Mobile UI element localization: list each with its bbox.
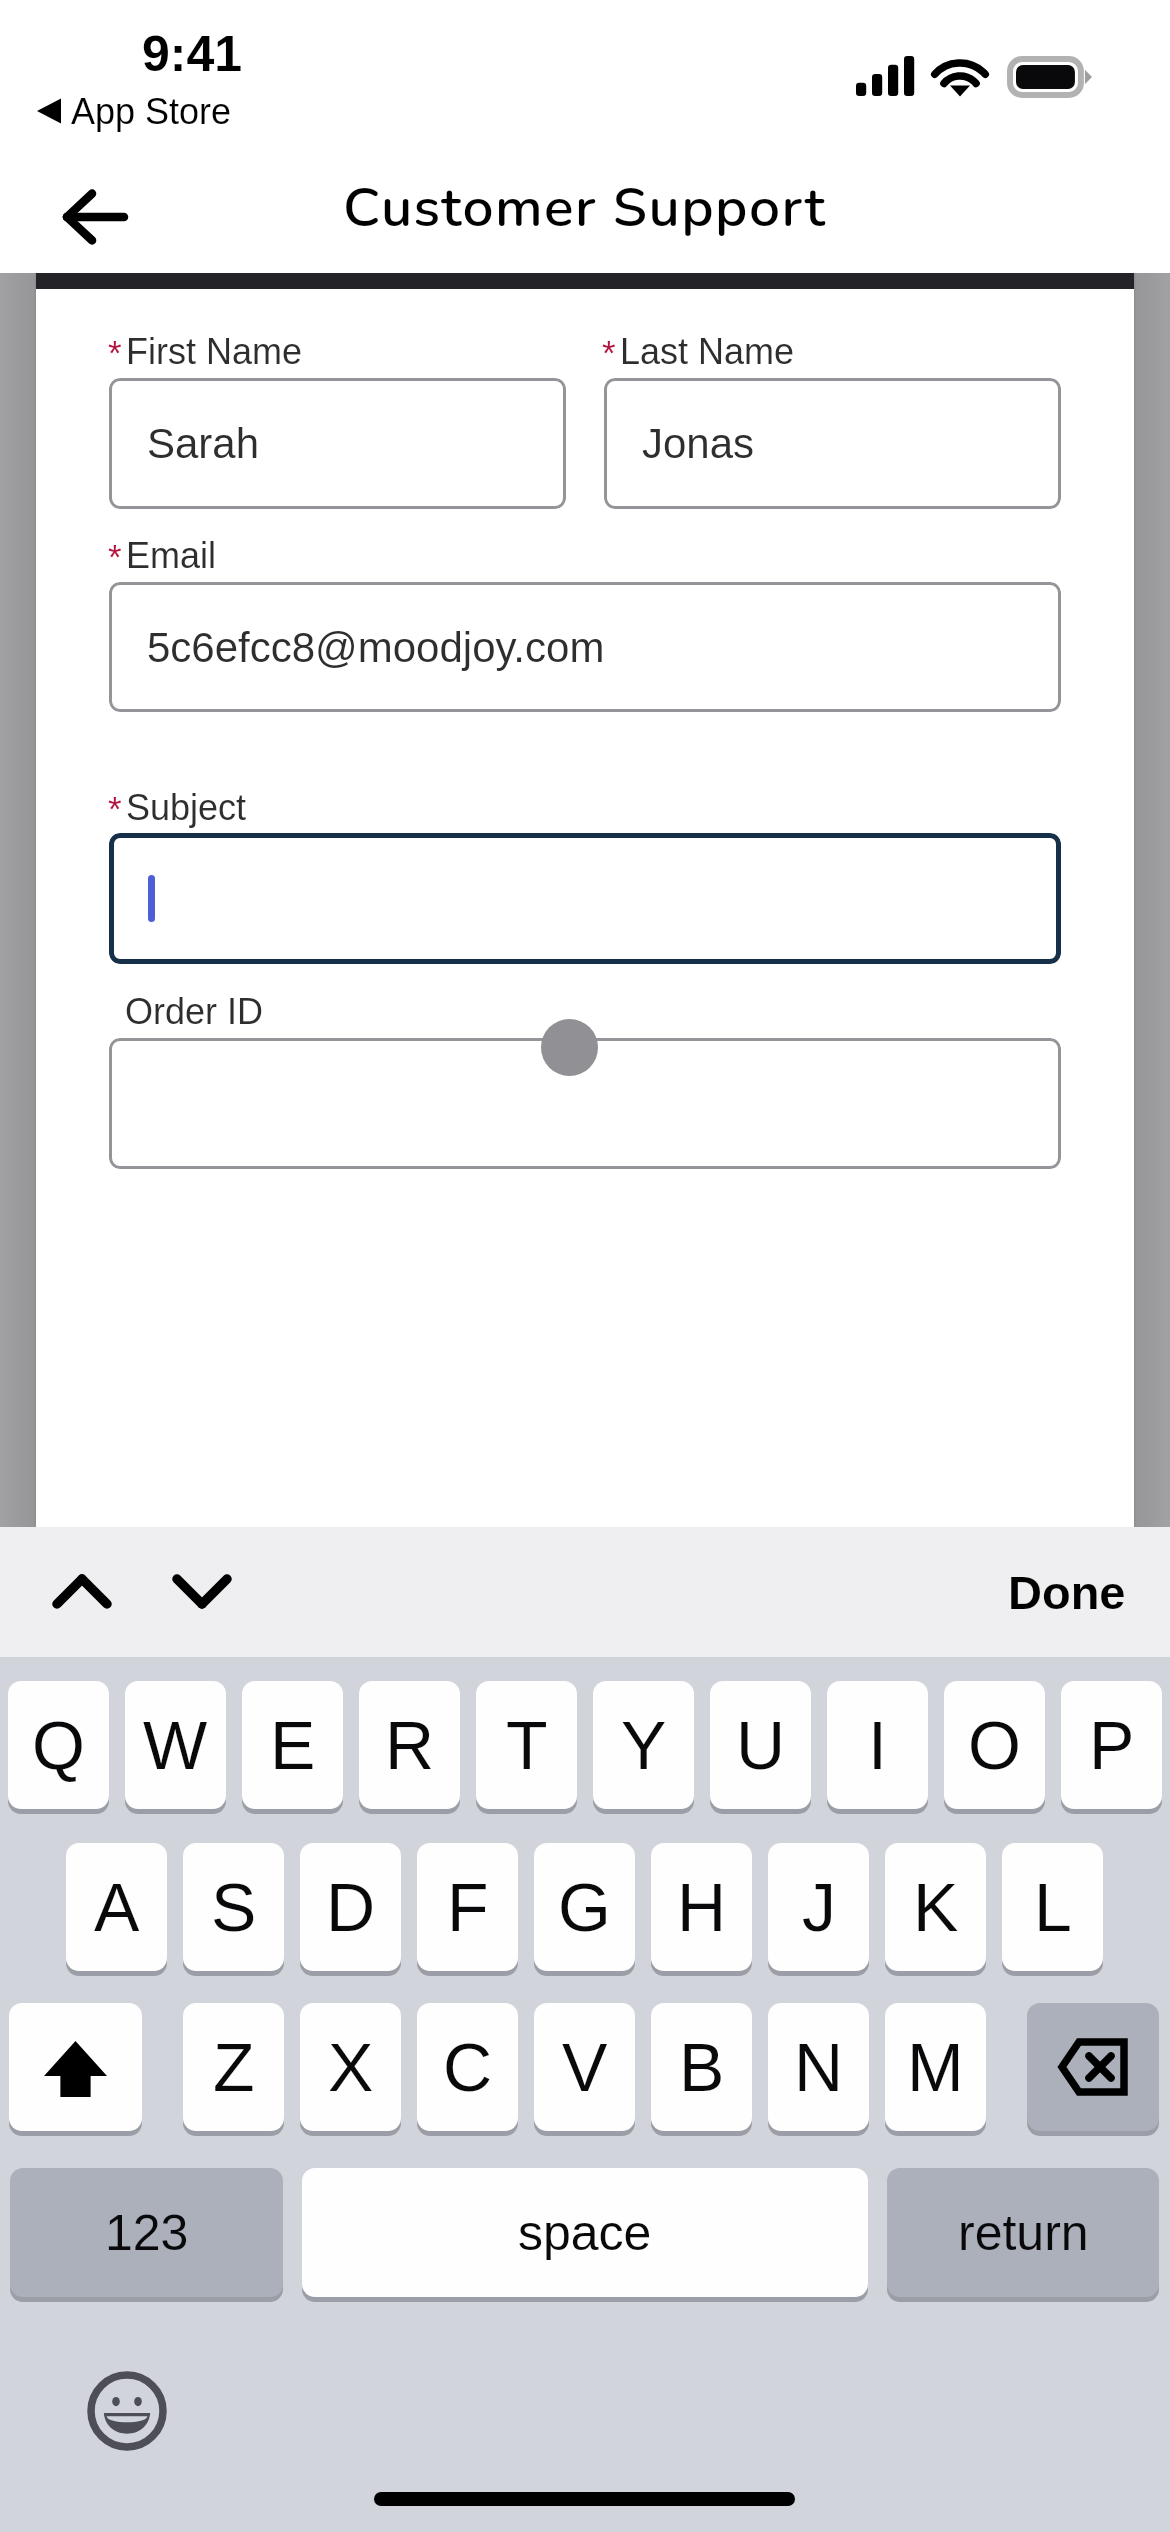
staticText: * — [108, 333, 122, 372]
staticText: Customer Support — [343, 170, 827, 245]
button[interactable] — [109, 833, 1061, 964]
button[interactable]: R — [359, 1681, 460, 1809]
staticText: G — [558, 1869, 611, 1945]
button[interactable]: Back — [44, 174, 144, 260]
staticText: L — [1034, 1869, 1072, 1945]
staticText: A — [94, 1869, 140, 1945]
button[interactable]: V — [534, 2003, 635, 2131]
staticText: O — [968, 1707, 1021, 1783]
button[interactable]: G — [534, 1843, 635, 1971]
staticText: N — [794, 2029, 844, 2105]
button[interactable]: T — [476, 1681, 577, 1809]
staticText: H — [677, 1869, 727, 1945]
staticText: Subject — [126, 787, 247, 827]
button[interactable]: E — [242, 1681, 343, 1809]
button[interactable]: M — [885, 2003, 986, 2131]
staticText: D — [326, 1869, 376, 1945]
button[interactable]: A — [66, 1843, 167, 1971]
button[interactable]: D — [300, 1843, 401, 1971]
staticText: Y — [621, 1707, 667, 1783]
button[interactable]: Done — [978, 1527, 1170, 1657]
button[interactable]: Jonas — [604, 378, 1061, 509]
button[interactable]: App Store — [37, 91, 232, 131]
staticText: J — [802, 1869, 836, 1945]
button[interactable]: X — [300, 2003, 401, 2131]
button[interactable]: 123 — [10, 2168, 283, 2297]
button[interactable]: F — [417, 1843, 518, 1971]
staticText: E — [270, 1707, 316, 1783]
staticText: P — [1089, 1707, 1135, 1783]
button[interactable]: Previous field — [36, 1545, 128, 1637]
staticText: Z — [213, 2029, 255, 2105]
button[interactable]: Backspace — [1027, 2003, 1159, 2131]
staticText: * — [108, 537, 122, 576]
staticText: M — [907, 2029, 964, 2105]
button[interactable]: Next field — [156, 1545, 248, 1637]
button[interactable]: Shift — [9, 2003, 142, 2131]
staticText: C — [443, 2029, 493, 2105]
button[interactable]: I — [827, 1681, 928, 1809]
button[interactable]: W — [125, 1681, 226, 1809]
staticText: B — [679, 2029, 725, 2105]
staticText: * — [602, 333, 616, 372]
button[interactable]: H — [651, 1843, 752, 1971]
button[interactable]: N — [768, 2003, 869, 2131]
button[interactable]: Q — [8, 1681, 109, 1809]
staticText: X — [328, 2029, 374, 2105]
button[interactable]: Emoji keyboard — [87, 2371, 167, 2451]
staticText: 5c6efcc8@moodjoy.com — [147, 624, 605, 671]
staticText: F — [447, 1869, 489, 1945]
button[interactable]: Z — [183, 2003, 284, 2131]
staticText: I — [868, 1707, 887, 1783]
staticText: Last Name — [620, 331, 795, 371]
staticText: Q — [32, 1707, 85, 1783]
staticText: 123 — [105, 2205, 189, 2261]
staticText: Done — [1008, 1566, 1126, 1619]
staticText: First Name — [126, 331, 303, 371]
staticText: V — [562, 2029, 608, 2105]
staticText: 9:41 — [142, 26, 243, 82]
staticText: K — [913, 1869, 959, 1945]
button[interactable]: return — [887, 2168, 1159, 2297]
button[interactable]: 5c6efcc8@moodjoy.com — [109, 582, 1061, 712]
button[interactable] — [109, 1038, 1061, 1169]
staticText: return — [958, 2205, 1089, 2261]
button[interactable]: S — [183, 1843, 284, 1971]
staticText: S — [211, 1869, 257, 1945]
button[interactable]: J — [768, 1843, 869, 1971]
button[interactable]: L — [1002, 1843, 1103, 1971]
staticText: R — [385, 1707, 435, 1783]
staticText: Sarah — [147, 420, 260, 467]
button[interactable]: space — [302, 2168, 868, 2297]
staticText: Jonas — [642, 420, 755, 467]
button[interactable]: K — [885, 1843, 986, 1971]
staticText: W — [143, 1707, 208, 1783]
staticText: Order ID — [125, 991, 264, 1031]
button[interactable]: C — [417, 2003, 518, 2131]
button[interactable]: Sarah — [109, 378, 566, 509]
staticText: U — [736, 1707, 786, 1783]
staticText: * — [108, 789, 122, 828]
button[interactable]: P — [1061, 1681, 1162, 1809]
staticText: space — [518, 2205, 652, 2261]
staticText: Email — [126, 535, 217, 575]
staticText: T — [506, 1707, 548, 1783]
button[interactable]: B — [651, 2003, 752, 2131]
button[interactable]: O — [944, 1681, 1045, 1809]
button[interactable]: Y — [593, 1681, 694, 1809]
button[interactable]: U — [710, 1681, 811, 1809]
staticText: App Store — [71, 91, 232, 131]
